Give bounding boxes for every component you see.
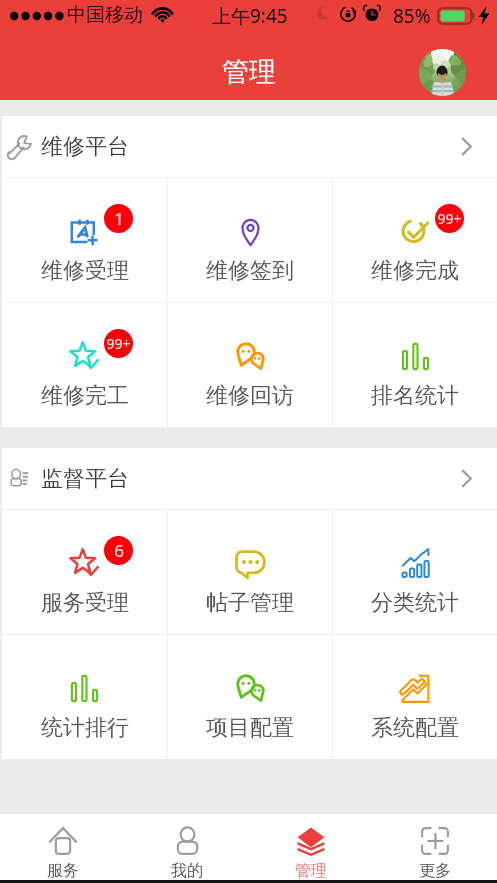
staticText: 帖子管理 bbox=[206, 589, 294, 617]
staticText: 上午9:45 bbox=[212, 3, 288, 29]
staticText: 维修签到 bbox=[206, 257, 294, 285]
button[interactable]: 统计排行 bbox=[2, 635, 167, 759]
staticText: 分类统计 bbox=[371, 589, 459, 617]
staticText: 项目配置 bbox=[206, 714, 294, 742]
staticText: 系统配置 bbox=[371, 714, 459, 742]
staticText: 我的 bbox=[171, 861, 203, 880]
button[interactable]: Profile bbox=[419, 49, 466, 96]
button[interactable]: 维修平台 bbox=[2, 116, 497, 177]
staticText: 维修平台 bbox=[41, 133, 129, 161]
staticText: 维修完工 bbox=[41, 382, 129, 410]
staticText: 管理 bbox=[295, 861, 327, 880]
button[interactable]: 99+ bbox=[2, 303, 167, 427]
staticText: 统计排行 bbox=[41, 714, 129, 742]
staticText: 中国移动 bbox=[67, 3, 143, 27]
staticText: 6 bbox=[114, 539, 124, 562]
staticText: 99+ bbox=[437, 209, 462, 228]
button[interactable]: 系统配置 bbox=[333, 635, 497, 759]
staticText: 维修完成 bbox=[371, 257, 459, 285]
staticText: 1 bbox=[114, 207, 124, 230]
button[interactable]: 1 bbox=[2, 178, 167, 302]
staticText: 维修回访 bbox=[206, 382, 294, 410]
button[interactable]: 帖子管理 bbox=[168, 510, 332, 634]
button[interactable]: 更多 bbox=[373, 814, 497, 880]
staticText: 服务受理 bbox=[41, 589, 129, 617]
staticText: 服务 bbox=[47, 861, 79, 880]
button[interactable]: 维修回访 bbox=[168, 303, 332, 427]
staticText: 99+ bbox=[106, 334, 131, 353]
button[interactable]: 排名统计 bbox=[333, 303, 497, 427]
button[interactable]: 项目配置 bbox=[168, 635, 332, 759]
button[interactable]: 维修签到 bbox=[168, 178, 332, 302]
button[interactable]: 管理 bbox=[249, 814, 373, 880]
button[interactable]: 服务 bbox=[0, 814, 125, 880]
staticText: 管理 bbox=[222, 55, 276, 89]
staticText: 排名统计 bbox=[371, 382, 459, 410]
staticText: 监督平台 bbox=[41, 465, 129, 493]
button[interactable]: 99+ bbox=[333, 178, 497, 302]
staticText: 维修受理 bbox=[41, 257, 129, 285]
button[interactable]: 监督平台 bbox=[2, 448, 497, 509]
button[interactable]: 6 bbox=[2, 510, 167, 634]
button[interactable]: 我的 bbox=[125, 814, 249, 880]
staticText: 85% bbox=[393, 3, 431, 29]
staticText: 更多 bbox=[419, 861, 451, 880]
button[interactable]: 分类统计 bbox=[333, 510, 497, 634]
